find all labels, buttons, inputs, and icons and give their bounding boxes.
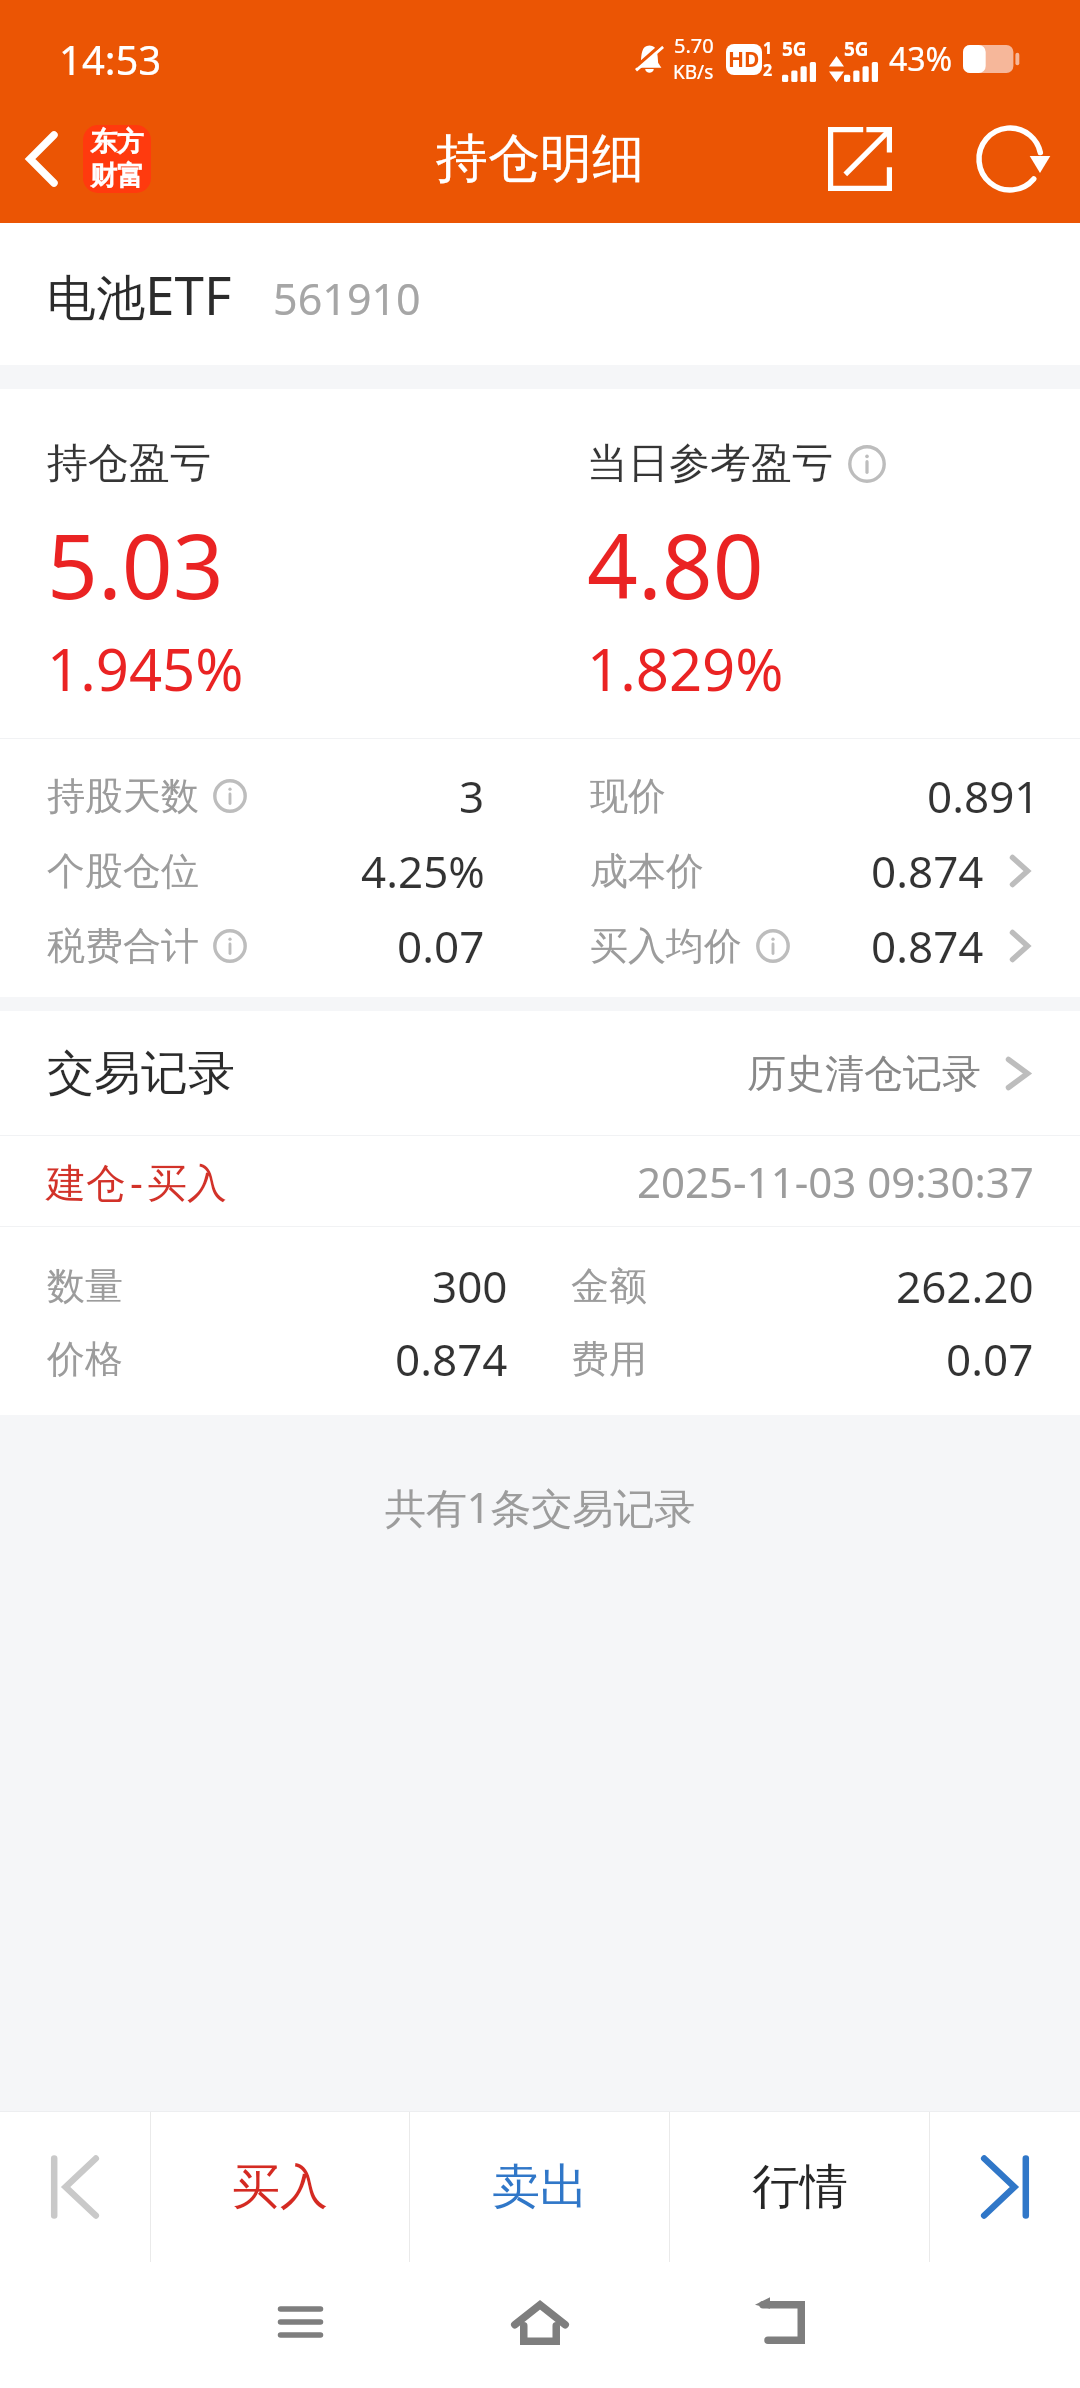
staticText: 现价 [590,772,666,820]
staticText: 当日参考盈亏 [587,438,833,490]
button[interactable]: Refresh [968,117,1052,201]
staticText: 5.70 [674,32,714,59]
staticText: 电池ETF 561910 [47,258,421,330]
staticText: 数量 [47,1262,123,1310]
staticText: 费用 [571,1335,647,1383]
button[interactable]: Last [930,2112,1080,2262]
staticText: 东方 [90,125,144,159]
staticText: 14:53 [59,32,162,86]
button[interactable]: 买入 [151,2112,409,2262]
staticText: 2025-11-03 09:30:37 [637,1153,1034,1210]
staticText: 价格 [47,1335,123,1383]
button[interactable]: 历史清仓记录 [747,1049,1030,1098]
staticText: 5G [844,36,869,62]
button[interactable]: 行情 [670,2112,929,2262]
staticText: 买入均价 [590,922,742,970]
staticText: 262.20 [896,1256,1034,1316]
staticText: 2 [763,59,773,81]
button[interactable]: 卖出 [410,2112,669,2262]
staticText: 3 [459,766,485,826]
staticText: 金额 [571,1262,647,1310]
staticText: 共有1条交易记录 [0,1479,1080,1535]
staticText: KB/s [673,59,714,85]
staticText: 持仓明细 [436,126,644,192]
staticText: 行情 [752,2157,848,2217]
staticText: 0.874 [871,841,984,901]
button[interactable]: Back [0,104,83,214]
button[interactable]: East Money logo [83,125,151,193]
staticText: 5.03 [47,504,224,625]
staticText: 1 [763,37,773,59]
staticText: 5G [782,36,807,62]
staticText: HD [728,45,760,74]
button[interactable]: 电池ETF 561910 [0,223,1080,365]
staticText: 持仓盈亏 [47,438,211,490]
staticText: 300 [432,1256,508,1316]
button[interactable]: Home [450,2268,630,2378]
staticText: 买入 [232,2157,328,2217]
staticText: 0.07 [946,1329,1034,1389]
staticText: 持股天数 [47,772,199,820]
staticText: 0.874 [395,1329,508,1389]
staticText: 财富 [90,159,144,193]
staticText: 0.891 [927,766,1040,826]
staticText: 历史清仓记录 [747,1049,981,1098]
staticText: 1.945% [47,629,244,708]
button[interactable]: First [0,2112,150,2262]
staticText: 43% [889,37,953,81]
button[interactable]: Back [690,2267,870,2377]
staticText: 成本价 [590,847,704,895]
button[interactable]: Recent apps [210,2267,390,2377]
staticText: 0.07 [397,916,485,976]
staticText: 税费合计 [47,922,199,970]
staticText: 4.80 [587,504,764,625]
staticText: 4.25% [361,841,485,901]
staticText: 建仓 - 买入 [46,1154,227,1209]
button[interactable]: Share [806,105,914,213]
staticText: 个股仓位 [47,847,199,895]
staticText: 0.874 [871,916,984,976]
staticText: 交易记录 [47,1044,235,1103]
staticText: 卖出 [492,2157,588,2217]
staticText: 1.829% [587,629,784,708]
